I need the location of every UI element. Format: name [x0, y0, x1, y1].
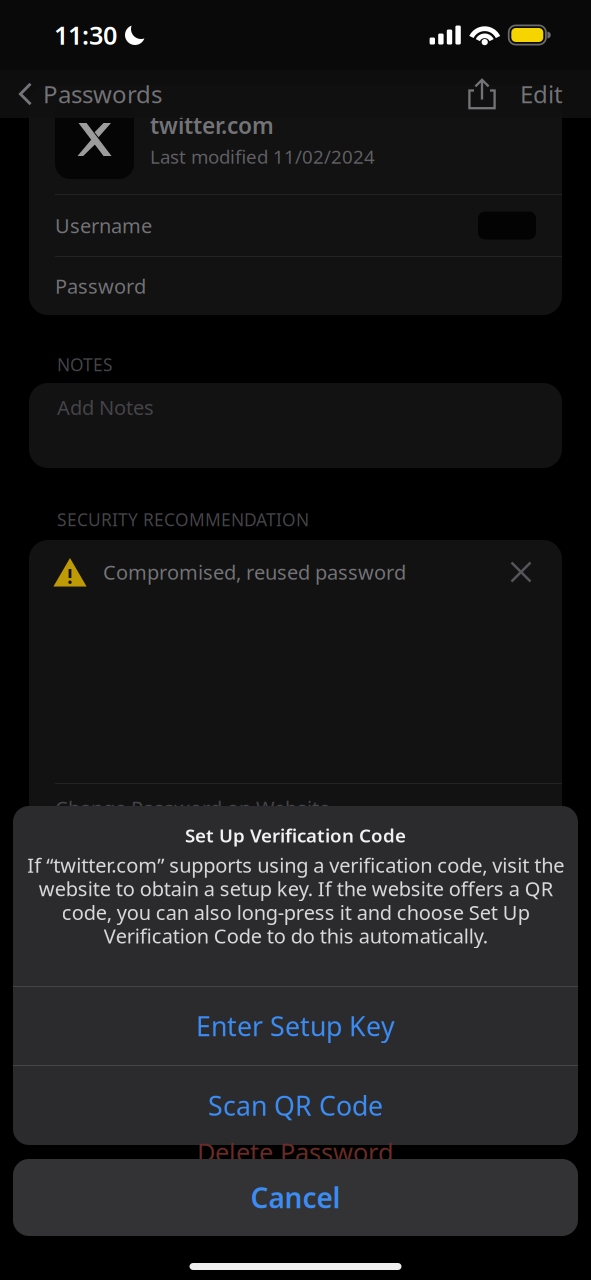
staticText: Set Up Verification Code	[185, 823, 406, 848]
staticText: Enter Setup Key	[196, 1008, 395, 1044]
staticText: Compromised, reused password	[103, 559, 406, 585]
staticText: Scan QR Code	[208, 1088, 383, 1123]
staticText: Username	[55, 212, 152, 239]
staticText: Last modified 11/02/2024	[150, 144, 375, 169]
button[interactable]: Edit	[504, 70, 579, 118]
button[interactable]: Enter Setup Key	[13, 987, 578, 1065]
button[interactable]: Cancel	[13, 1159, 578, 1236]
staticText: Password	[55, 273, 146, 299]
button[interactable]: Share	[460, 74, 504, 114]
staticText: NOTES	[57, 353, 113, 376]
button[interactable]: Passwords	[0, 70, 162, 118]
button[interactable]: Delete Password	[197, 1145, 394, 1159]
button[interactable]: Scan QR Code	[13, 1066, 578, 1145]
button[interactable]: Add Notes	[29, 383, 562, 468]
staticText: If “twitter.com” supports using a verifi…	[27, 852, 564, 949]
staticText: Add Notes	[57, 394, 154, 421]
button[interactable]: Username	[29, 195, 562, 256]
staticText: Change Password on Website	[55, 795, 330, 821]
staticText: Passwords	[43, 78, 162, 110]
button[interactable]: Dismiss	[506, 557, 536, 587]
staticText: SECURITY RECOMMENDATION	[57, 508, 309, 531]
staticText: 11:30	[54, 18, 117, 52]
button[interactable]: twitter.com	[29, 85, 562, 194]
staticText: twitter.com	[150, 110, 274, 140]
button[interactable]: Change Password on Website	[29, 784, 562, 832]
staticText: Edit	[520, 78, 563, 110]
button[interactable]: Password	[29, 257, 562, 315]
staticText: Cancel	[250, 1179, 340, 1216]
staticText: Delete Password	[197, 1135, 394, 1169]
